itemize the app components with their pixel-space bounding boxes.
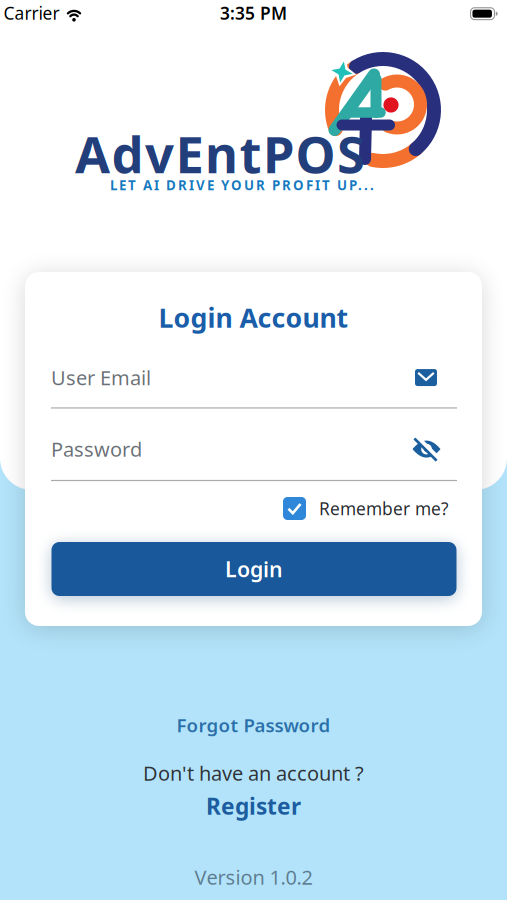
button[interactable]: Forgot Password — [176, 713, 330, 737]
staticText: Login — [225, 555, 283, 583]
staticText: Register — [206, 791, 301, 821]
button[interactable]: Register — [206, 791, 301, 821]
button[interactable]: Login — [51, 542, 456, 596]
button[interactable]: Password — [51, 436, 457, 481]
staticText: User Email — [51, 364, 151, 391]
staticText: LET AI DRIVE YOUR PROFIT UP... — [110, 176, 374, 194]
staticText: Password — [51, 436, 142, 462]
staticText: Forgot Password — [176, 713, 330, 737]
staticText: Carrier — [3, 1, 59, 24]
button[interactable]: Show password — [412, 436, 441, 462]
staticText: 3:35 PM — [220, 1, 287, 24]
staticText: Login Account — [158, 300, 348, 335]
staticText: Don't have an account ? — [143, 760, 364, 786]
button[interactable]: User Email — [51, 365, 457, 409]
staticText: Version 1.0.2 — [194, 864, 312, 890]
staticText: AdvEntPOS — [75, 120, 365, 187]
button[interactable]: Remember me? — [283, 497, 449, 520]
staticText: Remember me? — [319, 497, 449, 520]
